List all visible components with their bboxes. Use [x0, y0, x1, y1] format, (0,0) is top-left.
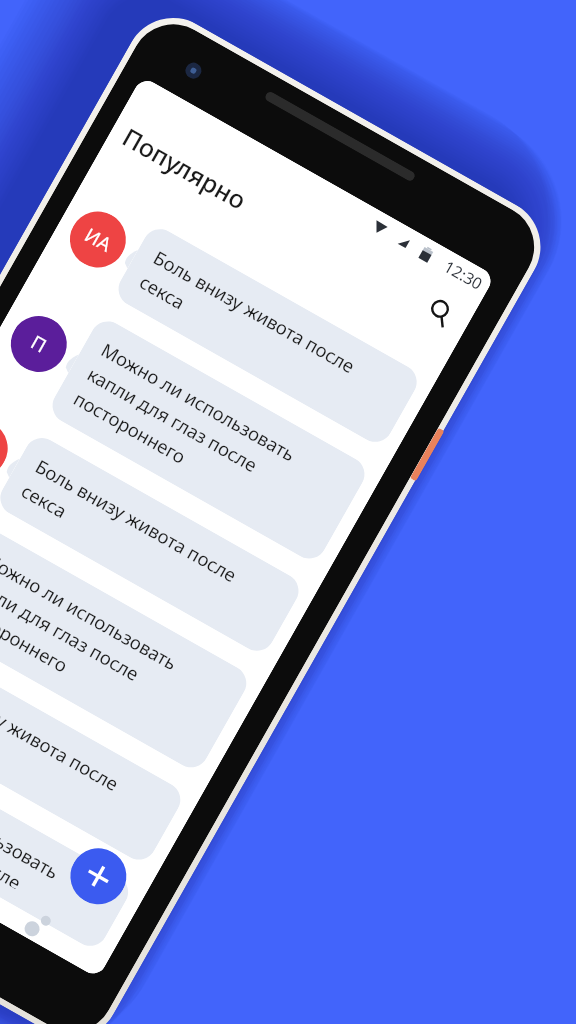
staticText: П [26, 329, 51, 359]
staticText: Можно ли использовать капли для глаз пос… [69, 337, 348, 543]
staticText: Боль внизу живота после секса [0, 662, 164, 844]
staticText: Популярно [117, 119, 253, 217]
button[interactable]: Search [413, 285, 467, 340]
button[interactable]: П [0, 281, 371, 565]
staticText: Можно ли использовать капли для глаз пос… [0, 755, 112, 930]
button[interactable]: ИА [0, 607, 187, 866]
button[interactable]: П [0, 699, 135, 952]
staticText: 12:30 [440, 255, 486, 295]
button[interactable]: ИА [53, 189, 423, 448]
button[interactable]: П [0, 490, 253, 774]
button[interactable]: ИА [0, 398, 305, 657]
staticText: Боль внизу живота после секса [17, 453, 282, 635]
staticText: Боль внизу живота после секса [135, 244, 400, 426]
staticText: ИА [80, 222, 116, 258]
button[interactable]: Profile [17, 903, 60, 947]
button[interactable]: Add [60, 838, 136, 914]
staticText: Можно ли использовать капли для глаз пос… [0, 546, 230, 752]
